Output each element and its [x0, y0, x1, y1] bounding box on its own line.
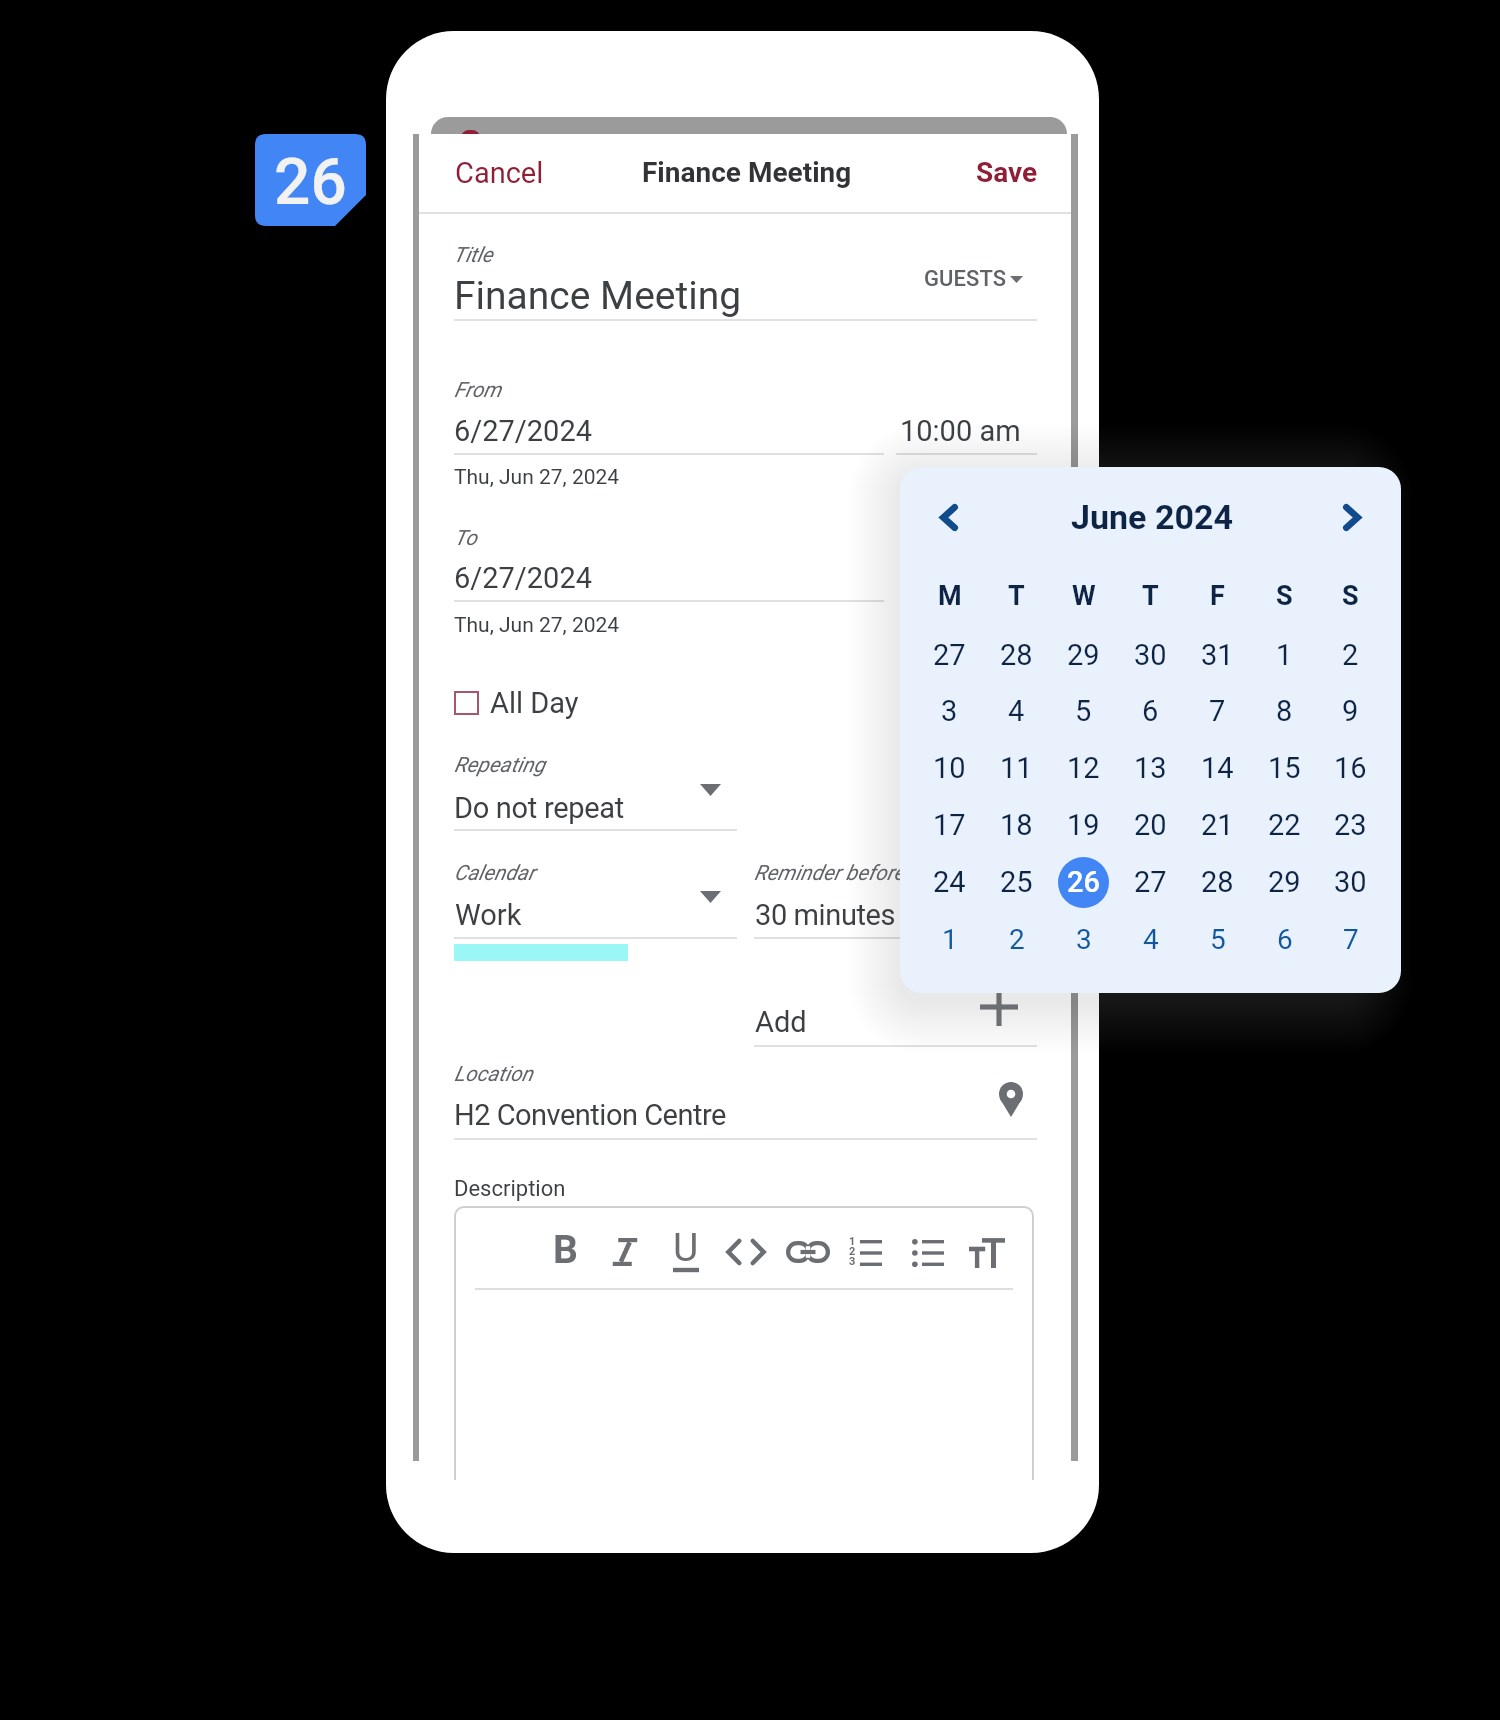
- button[interactable]: Previous month: [940, 504, 958, 531]
- staticText: Repeating: [454, 753, 545, 778]
- button[interactable]: 4: [1117, 911, 1184, 967]
- button[interactable]: 20: [1117, 797, 1184, 853]
- staticText: Calendar: [454, 861, 535, 886]
- staticText: 16: [1334, 751, 1367, 785]
- button[interactable]: 19: [1050, 797, 1117, 853]
- button[interactable]: Bold: [543, 1225, 587, 1277]
- staticText: 10: [933, 751, 966, 785]
- staticText: S: [1342, 580, 1359, 612]
- staticText: 17: [933, 808, 966, 842]
- staticText: 14: [1201, 751, 1234, 785]
- button[interactable]: [914, 259, 1029, 295]
- button[interactable]: 7: [1184, 683, 1251, 739]
- staticText: 11: [1000, 751, 1033, 785]
- staticText: 3: [1076, 923, 1092, 956]
- button[interactable]: 5: [1184, 911, 1251, 967]
- staticText: Do not repeat: [454, 791, 624, 825]
- button[interactable]: 14: [1184, 740, 1251, 796]
- button[interactable]: 29: [1050, 627, 1117, 683]
- button[interactable]: Next month: [1343, 504, 1361, 531]
- button[interactable]: 2: [983, 911, 1050, 967]
- button[interactable]: 24: [916, 854, 983, 910]
- button[interactable]: 15: [1251, 740, 1318, 796]
- button[interactable]: 27: [1117, 854, 1184, 910]
- button[interactable]: 28: [1184, 854, 1251, 910]
- staticText: Cancel: [455, 156, 544, 190]
- button[interactable]: Numbered list: [843, 1234, 889, 1272]
- staticText: 4: [1143, 923, 1159, 956]
- button[interactable]: 3: [916, 683, 983, 739]
- staticText: 6/27/2024: [454, 561, 593, 595]
- staticText: Finance Meeting: [454, 273, 742, 319]
- button[interactable]: 30: [1117, 627, 1184, 683]
- staticText: 13: [1134, 751, 1167, 785]
- button[interactable]: 28: [983, 627, 1050, 683]
- button[interactable]: 18: [983, 797, 1050, 853]
- button[interactable]: Bulleted list: [905, 1234, 951, 1272]
- button[interactable]: [453, 686, 603, 720]
- staticText: 27: [933, 638, 966, 672]
- button[interactable]: 27: [916, 627, 983, 683]
- button[interactable]: 6: [1251, 911, 1318, 967]
- button[interactable]: 31: [1184, 627, 1251, 683]
- button[interactable]: 25: [983, 854, 1050, 910]
- staticText: 6: [1142, 694, 1159, 728]
- button[interactable]: 1: [916, 911, 983, 967]
- button[interactable]: Location: [999, 1082, 1023, 1117]
- button[interactable]: 5: [1050, 683, 1117, 739]
- staticText: 1: [942, 923, 958, 956]
- button[interactable]: 7: [1317, 911, 1384, 967]
- staticText: B: [553, 1227, 578, 1273]
- button[interactable]: 12: [1050, 740, 1117, 796]
- button[interactable]: 6: [1117, 683, 1184, 739]
- staticText: All Day: [490, 686, 579, 720]
- button[interactable]: Underline: [664, 1227, 708, 1279]
- staticText: 22: [1268, 808, 1301, 842]
- button[interactable]: 23: [1317, 797, 1384, 853]
- button[interactable]: [443, 142, 548, 198]
- button[interactable]: 2: [1317, 627, 1384, 683]
- button[interactable]: 4: [983, 683, 1050, 739]
- button[interactable]: 8: [1251, 683, 1318, 739]
- staticText: H2 Convention Centre: [454, 1098, 726, 1132]
- button[interactable]: Add reminder: [980, 988, 1018, 1026]
- staticText: 28: [1000, 638, 1033, 672]
- button[interactable]: [964, 142, 1049, 198]
- button[interactable]: 26: [1050, 854, 1117, 910]
- button[interactable]: Text size: [958, 1231, 1016, 1275]
- button[interactable]: 21: [1184, 797, 1251, 853]
- button[interactable]: 22: [1251, 797, 1318, 853]
- staticText: 10:00 am: [900, 414, 1021, 448]
- button[interactable]: 13: [1117, 740, 1184, 796]
- button[interactable]: 29: [1251, 854, 1318, 910]
- staticText: 9: [1342, 694, 1359, 728]
- staticText: June 2024: [1071, 497, 1233, 537]
- button[interactable]: 3: [1050, 911, 1117, 967]
- staticText: 29: [1067, 638, 1100, 672]
- staticText: 18: [1000, 808, 1033, 842]
- button[interactable]: Calendar day 26: [255, 134, 366, 226]
- staticText: 12: [1067, 751, 1100, 785]
- staticText: 8: [1276, 694, 1293, 728]
- staticText: 30: [1134, 638, 1167, 672]
- button[interactable]: 17: [916, 797, 983, 853]
- staticText: 6/27/2024: [454, 414, 593, 448]
- button[interactable]: 11: [983, 740, 1050, 796]
- button[interactable]: 10: [916, 740, 983, 796]
- button[interactable]: 9: [1317, 683, 1384, 739]
- button[interactable]: Link: [782, 1235, 834, 1269]
- staticText: 25: [1000, 865, 1033, 899]
- staticText: 26: [1067, 865, 1100, 899]
- staticText: 5: [1075, 694, 1092, 728]
- staticText: 15: [1268, 751, 1301, 785]
- staticText: Save: [976, 156, 1038, 189]
- button[interactable]: Italic: [603, 1230, 647, 1274]
- staticText: GUESTS: [924, 266, 1007, 292]
- button[interactable]: 30: [1317, 854, 1384, 910]
- staticText: To: [454, 526, 477, 551]
- button[interactable]: Code: [720, 1232, 772, 1272]
- button[interactable]: 16: [1317, 740, 1384, 796]
- staticText: 20: [1134, 808, 1167, 842]
- staticText: Thu, Jun 27, 2024: [454, 465, 620, 490]
- button[interactable]: 1: [1251, 627, 1318, 683]
